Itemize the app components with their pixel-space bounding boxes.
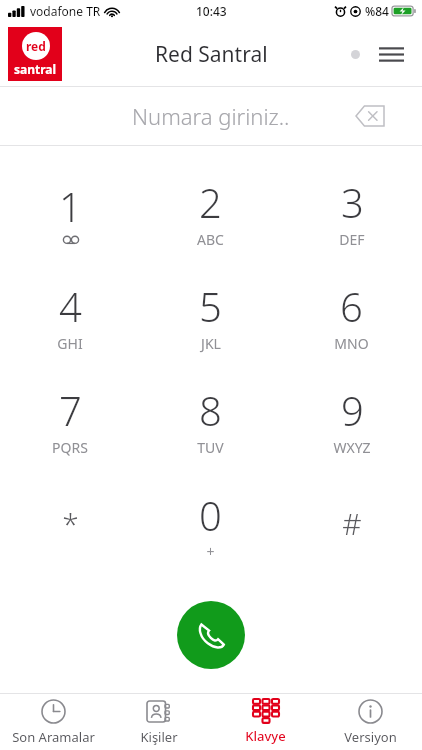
button[interactable]: Menu: [374, 37, 408, 71]
button[interactable]: #: [281, 472, 422, 576]
button[interactable]: Numara giriniz..: [0, 87, 422, 145]
button[interactable]: 2: [140, 160, 281, 264]
staticText: 6: [340, 279, 363, 333]
staticText: PQRS: [52, 438, 88, 457]
staticText: %84: [365, 3, 389, 19]
staticText: 5: [199, 279, 222, 333]
staticText: 8: [199, 383, 222, 437]
staticText: TUV: [197, 438, 224, 457]
staticText: +: [206, 542, 215, 561]
staticText: santral: [14, 61, 57, 77]
button[interactable]: 9: [281, 368, 422, 472]
staticText: MNO: [334, 334, 369, 353]
staticText: 0: [199, 488, 222, 542]
button[interactable]: red: [8, 27, 62, 81]
button[interactable]: 7: [0, 368, 140, 472]
staticText: 1: [59, 179, 82, 233]
staticText: WXYZ: [333, 438, 371, 457]
staticText: GHI: [57, 334, 83, 353]
button[interactable]: 8: [140, 368, 281, 472]
button[interactable]: Klavye: [212, 694, 318, 750]
button[interactable]: Son Aramalar: [0, 694, 106, 750]
button[interactable]: 4: [0, 264, 140, 368]
staticText: vodafone TR: [30, 3, 101, 19]
button[interactable]: Call: [177, 601, 245, 669]
button[interactable]: 3: [281, 160, 422, 264]
staticText: Versiyon: [344, 728, 397, 746]
staticText: ABC: [197, 230, 224, 249]
button[interactable]: Kişiler: [106, 694, 212, 750]
staticText: Klavye: [245, 727, 286, 745]
staticText: 7: [59, 383, 82, 437]
staticText: Numara giriniz..: [132, 101, 290, 131]
staticText: *: [62, 503, 79, 544]
button[interactable]: 6: [281, 264, 422, 368]
button[interactable]: 5: [140, 264, 281, 368]
staticText: 10:43: [196, 3, 227, 19]
staticText: red: [26, 38, 46, 54]
button[interactable]: Versiyon: [318, 694, 422, 750]
staticText: 3: [341, 175, 364, 229]
button[interactable]: Backspace: [350, 96, 390, 136]
staticText: Son Aramalar: [12, 728, 95, 746]
staticText: Red Santral: [155, 40, 268, 69]
staticText: 9: [341, 383, 364, 437]
staticText: JKL: [201, 334, 221, 353]
staticText: DEF: [339, 230, 365, 249]
staticText: #: [342, 503, 362, 544]
staticText: Kişiler: [140, 728, 178, 746]
button[interactable]: *: [0, 472, 140, 576]
staticText: 2: [199, 175, 222, 229]
button[interactable]: 0: [140, 472, 281, 576]
button[interactable]: 1: [0, 160, 140, 264]
staticText: 4: [59, 279, 82, 333]
